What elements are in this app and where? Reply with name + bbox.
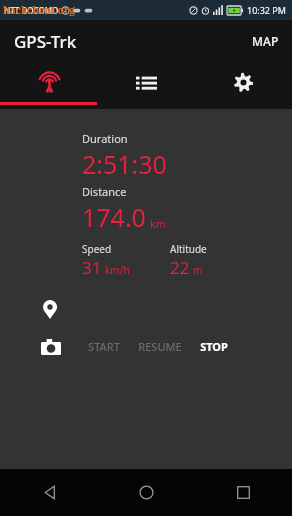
staticText: MAP: [252, 33, 279, 49]
staticText: 174.0: [82, 200, 146, 234]
button[interactable]: Recents: [195, 469, 292, 516]
staticText: RESUME: [138, 339, 182, 354]
button[interactable]: Home: [98, 469, 195, 516]
staticText: m: [193, 263, 203, 277]
staticText: 22: [170, 256, 190, 279]
button[interactable]: Tab: [195, 62, 292, 102]
staticText: NTT DOCOMO: [4, 5, 59, 16]
staticText: GPS-Trk: [14, 30, 77, 53]
button[interactable]: Add waypoint: [38, 297, 62, 321]
staticText: 10:32 PM: [247, 4, 286, 16]
staticText: 31: [82, 256, 102, 279]
staticText: Speed: [82, 242, 112, 256]
staticText: Distance: [82, 184, 127, 199]
staticText: km: [150, 216, 167, 231]
staticText: START: [88, 339, 120, 354]
staticText: hackcheat.org: [3, 3, 75, 17]
staticText: km/h: [105, 263, 130, 277]
button[interactable]: STOP: [198, 331, 230, 362]
button[interactable]: Take photo: [38, 334, 64, 360]
staticText: Duration: [82, 131, 128, 146]
staticText: STOP: [200, 339, 228, 354]
button[interactable]: Tab: [98, 62, 195, 102]
button[interactable]: Tracking tab: [0, 62, 98, 102]
staticText: Altitude: [170, 242, 207, 256]
button[interactable]: START: [86, 331, 122, 362]
staticText: 2:51:30: [82, 147, 167, 181]
button[interactable]: MAP: [239, 23, 292, 59]
button[interactable]: RESUME: [136, 331, 184, 362]
button[interactable]: Back: [0, 469, 98, 516]
